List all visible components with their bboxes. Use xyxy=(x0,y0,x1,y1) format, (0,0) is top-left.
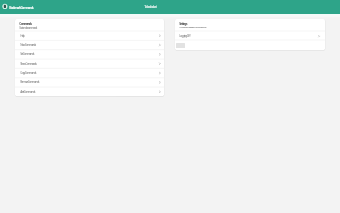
staticText: Remove Commands xyxy=(20,80,39,84)
button[interactable]: New Commands xyxy=(15,40,164,49)
button[interactable]: Show Commands xyxy=(15,58,164,67)
staticText: Copy Commands xyxy=(20,71,36,75)
button[interactable]: Set Commands xyxy=(15,49,164,58)
staticText: Use to make commands xyxy=(19,26,37,30)
staticText: Logging: Off xyxy=(179,33,190,37)
staticText: Configure the application to your prefer… xyxy=(179,26,206,29)
staticText: Commands xyxy=(19,22,32,26)
staticText: New Commands xyxy=(20,43,36,47)
button[interactable]: Logging setting xyxy=(175,31,325,40)
button[interactable]: Take a look at xyxy=(143,3,161,11)
staticText: Show Commands xyxy=(20,62,36,66)
staticText: Settings xyxy=(179,22,187,26)
button[interactable]: Remove Commands xyxy=(15,76,164,85)
staticText: Take a look at xyxy=(145,5,157,9)
staticText: Alert Commands xyxy=(20,90,35,94)
button[interactable]: Copy Commands xyxy=(15,67,164,76)
button[interactable]: App logo xyxy=(2,3,9,10)
staticText: Set Commands xyxy=(20,52,34,56)
staticText: Bookmark Commands xyxy=(9,5,33,9)
button[interactable]: Help xyxy=(15,31,164,40)
staticText: Help xyxy=(20,34,24,38)
button[interactable]: Alert Commands xyxy=(15,85,164,94)
